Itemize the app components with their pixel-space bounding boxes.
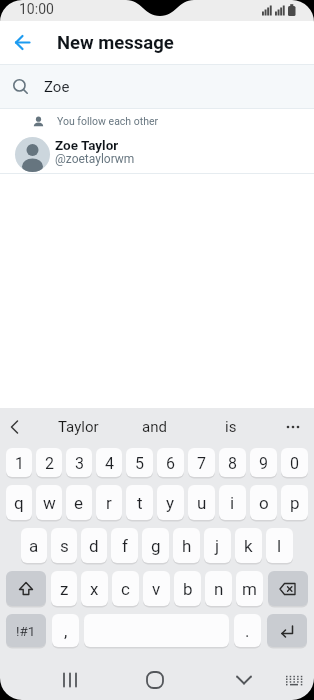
button[interactable]: 2 [36, 448, 62, 478]
staticText: c [121, 579, 130, 599]
button[interactable]: c [112, 571, 139, 607]
staticText: x [90, 579, 99, 599]
staticText: r [106, 493, 112, 513]
staticText: and [142, 418, 167, 436]
staticText: You follow each other [57, 115, 159, 127]
staticText: u [197, 493, 207, 513]
button[interactable]: 6 [157, 448, 184, 478]
button[interactable]: f [111, 528, 138, 564]
button[interactable]: a [21, 528, 47, 564]
button[interactable]: s [51, 528, 77, 564]
staticText: b [183, 579, 193, 599]
button[interactable] [8, 28, 38, 58]
button[interactable]: q [6, 485, 32, 521]
staticText: 1 [15, 454, 24, 473]
staticText: Zoe Taylor [55, 137, 119, 153]
staticText: is [225, 418, 237, 436]
button[interactable]: b [174, 571, 201, 607]
button[interactable]: o [250, 485, 277, 521]
button[interactable] [6, 571, 46, 607]
button[interactable]: . [234, 614, 261, 648]
button[interactable]: v [143, 571, 170, 607]
staticText: s [60, 536, 69, 556]
staticText: w [43, 493, 56, 513]
button[interactable]: k [235, 528, 262, 564]
staticText: n [214, 579, 224, 599]
staticText: . [245, 621, 250, 641]
staticText: p [290, 493, 300, 513]
button[interactable]: t [126, 485, 153, 521]
staticText: 3 [75, 454, 84, 473]
button[interactable] [84, 614, 229, 648]
button[interactable]: u [188, 485, 215, 521]
staticText: f [122, 536, 128, 556]
staticText: 2 [45, 454, 54, 473]
staticText: 10:00 [19, 1, 54, 17]
staticText: a [29, 536, 39, 556]
staticText: 0 [290, 454, 299, 473]
button[interactable]: y [157, 485, 184, 521]
button[interactable]: Taylor [38, 408, 118, 446]
button[interactable]: l [266, 528, 293, 564]
staticText: 5 [135, 454, 144, 473]
button[interactable]: n [205, 571, 232, 607]
button[interactable]: !#1 [6, 614, 46, 648]
staticText: Zoe [44, 78, 70, 96]
staticText: e [74, 493, 84, 513]
button[interactable]: 0 [281, 448, 308, 478]
staticText: m [242, 579, 257, 599]
staticText: @zoetaylorwm [55, 152, 135, 166]
button[interactable]: z [51, 571, 77, 607]
button[interactable]: 4 [96, 448, 122, 478]
staticText: !#1 [16, 623, 36, 639]
staticText: j [215, 536, 220, 556]
button[interactable]: g [142, 528, 169, 564]
button[interactable]: 3 [66, 448, 92, 478]
button[interactable]: and [114, 408, 194, 446]
button[interactable]: is [191, 408, 271, 446]
button[interactable] [268, 571, 308, 607]
staticText: l [277, 536, 282, 556]
button[interactable]: m [236, 571, 263, 607]
button[interactable]: 5 [126, 448, 153, 478]
button[interactable]: i [219, 485, 246, 521]
staticText: o [259, 493, 269, 513]
staticText: New message [57, 32, 174, 54]
staticText: 7 [197, 454, 206, 473]
staticText: 8 [228, 454, 237, 473]
button[interactable]: 7 [188, 448, 215, 478]
staticText: q [14, 493, 24, 513]
button[interactable]: d [81, 528, 107, 564]
button[interactable]: 8 [219, 448, 246, 478]
staticText: k [244, 536, 253, 556]
button[interactable] [267, 614, 307, 648]
staticText: g [151, 536, 161, 556]
button[interactable]: x [81, 571, 108, 607]
staticText: Taylor [58, 418, 99, 436]
button[interactable]: Zoe [0, 65, 314, 108]
staticText: t [137, 493, 143, 513]
button[interactable]: w [36, 485, 62, 521]
button[interactable]: h [173, 528, 200, 564]
button[interactable]: 1 [6, 448, 32, 478]
staticText: y [166, 493, 175, 513]
button[interactable]: e [66, 485, 92, 521]
button[interactable]: j [204, 528, 231, 564]
button[interactable]: You follow each other [0, 109, 314, 173]
button[interactable]: p [281, 485, 308, 521]
button[interactable]: r [96, 485, 122, 521]
staticText: 4 [105, 454, 114, 473]
staticText: i [230, 493, 235, 513]
staticText: d [89, 536, 99, 556]
button[interactable]: , [52, 614, 79, 648]
staticText: 9 [259, 454, 268, 473]
button[interactable]: 9 [250, 448, 277, 478]
staticText: v [152, 579, 161, 599]
staticText: h [182, 536, 192, 556]
staticText: 6 [166, 454, 175, 473]
staticText: , [64, 621, 68, 641]
staticText: z [60, 579, 69, 599]
